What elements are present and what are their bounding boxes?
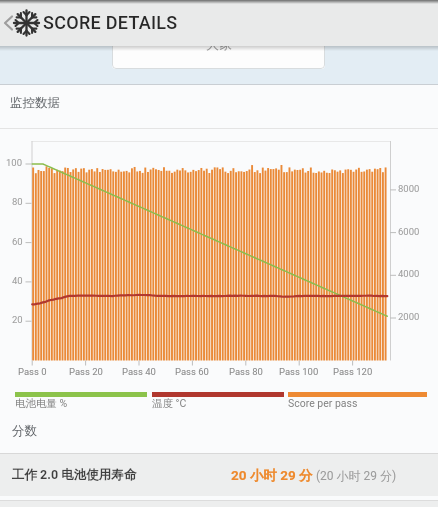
staticText: 6000 bbox=[398, 226, 420, 237]
staticText: 100 bbox=[6, 157, 23, 168]
staticText: 工作 2.0 电池使用寿命 bbox=[12, 467, 137, 483]
staticText: 大家 bbox=[206, 40, 232, 52]
staticText: Pass 0 bbox=[18, 366, 47, 377]
button[interactable] bbox=[0, 0, 44, 46]
staticText: 60 bbox=[12, 236, 23, 247]
staticText: Pass 20 bbox=[69, 366, 103, 377]
button[interactable]: 工作 2.0 电池使用寿命 bbox=[0, 454, 438, 496]
staticText: 温度 °C bbox=[152, 397, 187, 410]
staticText: 80 bbox=[12, 196, 23, 207]
staticText: (20 小时 29 分) bbox=[316, 468, 397, 483]
staticText: 监控数据 bbox=[10, 95, 60, 111]
staticText: 2000 bbox=[398, 311, 420, 322]
staticText: Pass 100 bbox=[279, 366, 319, 377]
staticText: 20 bbox=[12, 314, 23, 325]
staticText: Pass 40 bbox=[122, 366, 156, 377]
staticText: 20 小时 29 分 bbox=[231, 467, 316, 484]
staticText: Pass 120 bbox=[333, 366, 373, 377]
staticText: 8000 bbox=[398, 183, 420, 194]
staticText: Pass 80 bbox=[229, 366, 263, 377]
staticText: 4000 bbox=[398, 268, 420, 279]
staticText: Score per pass bbox=[288, 397, 358, 409]
staticText: 电池电量 % bbox=[15, 397, 68, 410]
staticText: Pass 60 bbox=[175, 366, 209, 377]
staticText: SCORE DETAILS bbox=[43, 12, 178, 33]
staticText: 分数 bbox=[12, 423, 37, 439]
staticText: 40 bbox=[12, 275, 23, 286]
button[interactable]: 大家 bbox=[112, 40, 325, 69]
